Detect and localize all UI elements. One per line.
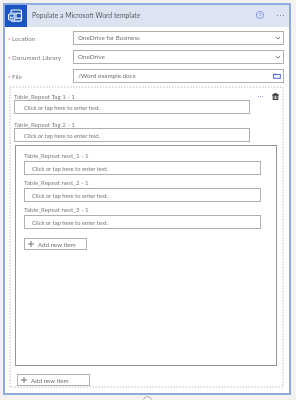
staticText: OneDrive for Business (78, 34, 275, 42)
staticText: Document Library (12, 54, 61, 61)
staticText: File (12, 73, 22, 80)
button[interactable]: Click or tap here to enter text. (24, 188, 261, 202)
button[interactable]: /Word example.docx (73, 69, 284, 83)
button[interactable]: Add new item (17, 374, 90, 386)
staticText: Table_Repeat Tag 2 - 1 (14, 121, 75, 128)
staticText: Populate a Microsoft Word template (32, 11, 141, 19)
button[interactable]: Add new item (24, 238, 87, 250)
staticText: /Word example.docx (78, 72, 273, 80)
staticText: Click or tap here to enter text. (32, 192, 261, 199)
button[interactable]: Populate a Microsoft Word template (3, 3, 291, 27)
button[interactable]: Click or tap here to enter text. (14, 128, 250, 142)
staticText: Table_Repeat nest_3 - 1 (24, 206, 89, 213)
staticText: Click or tap here to enter text. (32, 165, 261, 172)
staticText: Click or tap here to enter text. (24, 104, 250, 111)
button[interactable]: OneDrive (73, 50, 284, 64)
button[interactable]: OneDrive for Business (73, 31, 284, 45)
button[interactable]: Click or tap here to enter text. (24, 215, 261, 229)
staticText: Table_Repeat nest_2 - 1 (24, 179, 89, 186)
staticText: Table_Repeat Tag 1 - 1 (14, 93, 75, 100)
staticText: Table_Repeat nest_1 - 1 (24, 152, 89, 159)
staticText: Add new item (38, 241, 76, 248)
button[interactable]: Click or tap here to enter text. (14, 100, 250, 114)
staticText: OneDrive (78, 53, 275, 61)
staticText: * (8, 55, 11, 62)
staticText: * (8, 36, 11, 43)
staticText: * (8, 74, 11, 81)
button[interactable]: Click or tap here to enter text. (24, 161, 261, 175)
staticText: Click or tap here to enter text. (32, 219, 261, 226)
staticText: Click or tap here to enter text. (24, 132, 250, 139)
button[interactable]: Delete (269, 90, 281, 102)
staticText: Add new item (31, 377, 69, 384)
button[interactable]: More options (254, 90, 266, 102)
button[interactable]: Help (250, 5, 270, 25)
staticText: Location (12, 35, 36, 42)
button[interactable]: More options (270, 5, 290, 25)
